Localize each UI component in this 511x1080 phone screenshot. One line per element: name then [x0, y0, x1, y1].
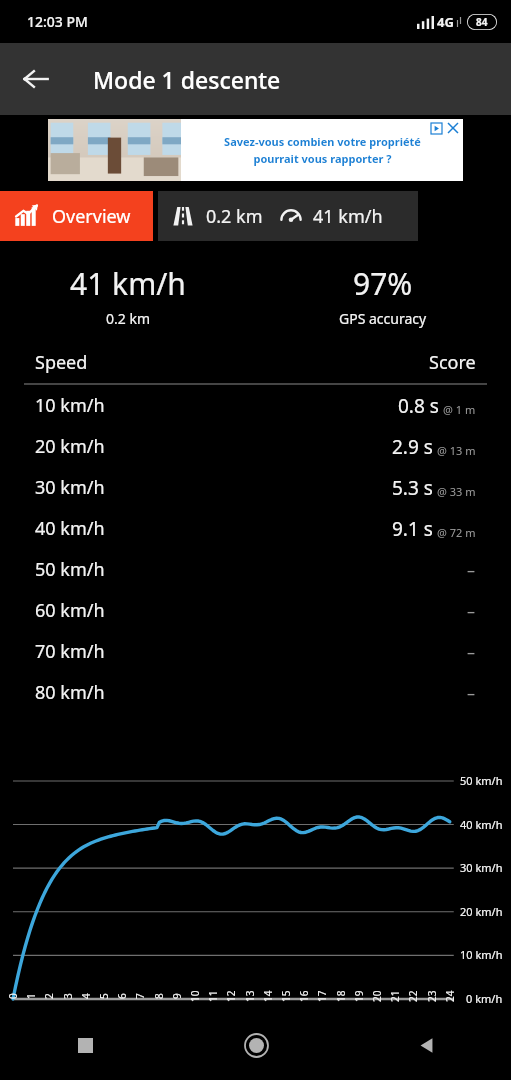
staticText: 30 km/h — [460, 860, 503, 875]
staticText: 50 km/h — [460, 773, 503, 788]
staticText: Speed — [35, 350, 88, 375]
staticText: 0.2 km — [206, 204, 263, 229]
staticText: 5 — [97, 993, 111, 999]
staticText: 15 — [279, 990, 293, 1002]
staticText: 97% — [353, 263, 413, 304]
staticText: – — [467, 682, 476, 704]
staticText: 13 — [243, 990, 257, 1002]
button[interactable]: 20 km/h — [24, 426, 487, 467]
staticText: 20 — [370, 990, 384, 1002]
button[interactable]: 10 km/h — [24, 385, 487, 426]
staticText: GPS accuracy — [339, 309, 427, 328]
button[interactable]: Overview — [0, 191, 153, 241]
staticText: 10 km/h — [460, 947, 503, 962]
staticText: 40 km/h — [35, 516, 105, 541]
staticText: 0.2 km — [106, 309, 150, 328]
button[interactable]: 50 km/h — [24, 549, 487, 590]
button[interactable]: Back — [341, 1010, 511, 1080]
staticText: 21 — [388, 990, 402, 1002]
staticText: – — [467, 600, 476, 622]
staticText: 19 — [352, 990, 366, 1002]
staticText: 41 km/h — [70, 263, 186, 304]
button[interactable]: 60 km/h — [24, 590, 487, 631]
staticText: 22 — [406, 990, 420, 1002]
staticText: 60 km/h — [35, 598, 105, 623]
button[interactable]: 80 km/h — [24, 672, 487, 713]
staticText: 41 km/h — [313, 204, 383, 229]
button[interactable]: Back — [12, 55, 60, 103]
staticText: 4 — [79, 993, 93, 999]
button[interactable]: Savez-vous combien votre propriété — [48, 119, 463, 181]
staticText: 12:03 PM — [27, 12, 88, 31]
staticText: – — [467, 641, 476, 663]
staticText: 5.3 s — [392, 475, 433, 501]
staticText: @ 72 m — [437, 525, 476, 540]
staticText: – — [467, 559, 476, 581]
staticText: 0.8 s — [398, 393, 439, 419]
staticText: @ 13 m — [437, 443, 476, 458]
staticText: Score — [429, 350, 476, 375]
staticText: 24 — [443, 990, 457, 1002]
staticText: Savez-vous combien votre propriété — [224, 134, 421, 149]
button[interactable]: 70 km/h — [24, 631, 487, 672]
staticText: 20 km/h — [460, 904, 503, 919]
staticText: 70 km/h — [35, 639, 105, 664]
staticText: @ 1 m — [443, 402, 476, 417]
staticText: Mode 1 descente — [93, 64, 281, 95]
staticText: 17 — [315, 990, 329, 1002]
staticText: 0 km/h — [466, 991, 503, 1006]
staticText: Overview — [52, 204, 131, 229]
staticText: 14 — [261, 990, 275, 1002]
staticText: 18 — [334, 990, 348, 1002]
staticText: 0 — [6, 993, 20, 999]
button[interactable]: 0.2 km — [158, 191, 418, 241]
staticText: 16 — [297, 990, 311, 1002]
staticText: 9.1 s — [392, 516, 433, 542]
staticText: 20 km/h — [35, 434, 105, 459]
staticText: 6 — [115, 993, 129, 999]
staticText: 8 — [152, 993, 166, 999]
staticText: 84 — [476, 15, 488, 29]
staticText: 2.9 s — [392, 434, 433, 460]
button[interactable]: AdChoices — [429, 121, 443, 135]
staticText: 50 km/h — [35, 557, 105, 582]
staticText: 1 — [24, 993, 38, 999]
button[interactable]: 40 km/h — [24, 508, 487, 549]
staticText: 40 km/h — [460, 817, 503, 832]
staticText: 2 — [42, 993, 56, 999]
button[interactable]: Recent apps — [0, 1010, 171, 1080]
staticText: 12 — [224, 990, 238, 1002]
staticText: @ 33 m — [437, 484, 476, 499]
staticText: 3 — [61, 993, 75, 999]
staticText: 9 — [170, 993, 184, 999]
staticText: pourrait vous rapporter ? — [253, 151, 392, 166]
button[interactable]: Home — [171, 1010, 341, 1080]
staticText: 80 km/h — [35, 680, 105, 705]
button[interactable]: Close ad — [446, 121, 460, 135]
staticText: 11 — [206, 990, 220, 1002]
staticText: 7 — [133, 993, 147, 999]
staticText: 30 km/h — [35, 475, 105, 500]
button[interactable]: 30 km/h — [24, 467, 487, 508]
staticText: 10 km/h — [35, 393, 105, 418]
staticText: 10 — [188, 990, 202, 1002]
staticText: 4G — [437, 13, 454, 31]
staticText: 23 — [425, 990, 439, 1002]
